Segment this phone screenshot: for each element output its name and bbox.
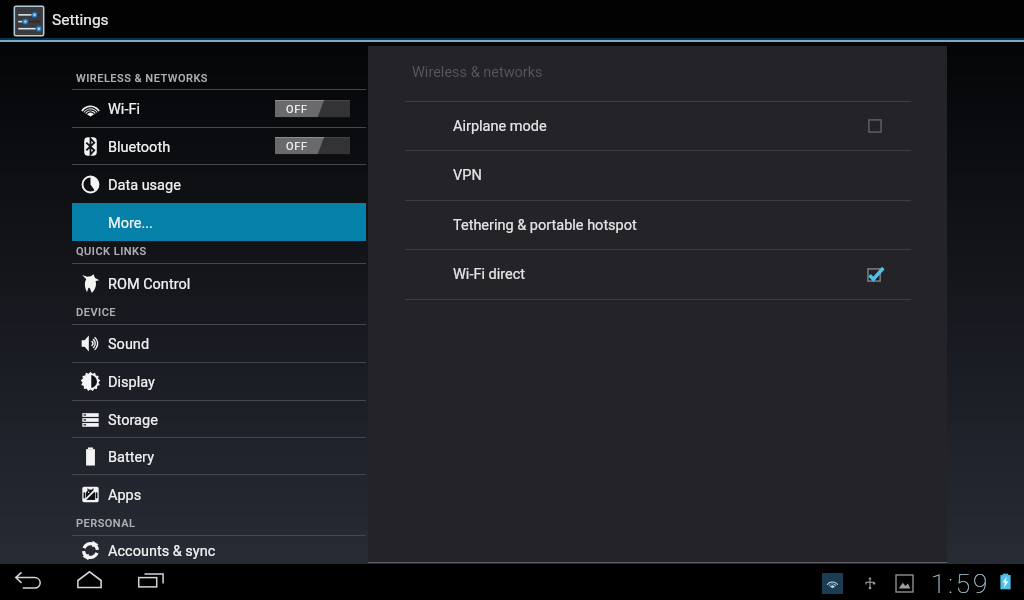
- staticText: VPN: [453, 167, 482, 184]
- button[interactable]: Settings: [13, 5, 45, 37]
- button[interactable]: Recent apps: [130, 562, 172, 598]
- button[interactable]: Apps: [72, 475, 366, 513]
- other: USB connected: [860, 573, 879, 592]
- button[interactable]: Sound: [72, 325, 366, 362]
- button[interactable]: Wi-Fi: [72, 90, 366, 127]
- button[interactable]: Back: [7, 562, 49, 598]
- staticText: Data usage: [108, 177, 181, 194]
- staticText: Wi-Fi: [108, 101, 140, 118]
- button[interactable]: OFF: [275, 137, 350, 155]
- button[interactable]: Tethering & portable hotspot: [368, 201, 947, 249]
- staticText: WIRELESS & NETWORKS: [76, 72, 208, 85]
- button[interactable]: Data usage: [72, 165, 366, 203]
- staticText: Airplane mode: [453, 118, 547, 135]
- button[interactable]: Wi-Fi direct: [368, 250, 947, 299]
- button[interactable]: Battery: [72, 438, 366, 474]
- button[interactable]: Home: [68, 562, 110, 598]
- other: Screenshot captured: [893, 572, 915, 594]
- staticText: Tethering & portable hotspot: [453, 217, 637, 234]
- button[interactable]: Airplane mode checkbox: [860, 111, 890, 141]
- staticText: Display: [108, 374, 155, 391]
- staticText: OFF: [286, 103, 308, 116]
- staticText: Battery: [108, 449, 154, 466]
- button[interactable]: Bluetooth: [72, 128, 366, 164]
- button[interactable]: More...: [72, 203, 366, 241]
- staticText: Storage: [108, 412, 158, 429]
- button[interactable]: Display: [72, 363, 366, 400]
- staticText: PERSONAL: [76, 517, 136, 530]
- staticText: Wireless & networks: [412, 64, 543, 81]
- staticText: Apps: [108, 487, 142, 504]
- staticText: Sound: [108, 336, 150, 353]
- staticText: Accounts & sync: [108, 543, 216, 560]
- button[interactable]: Storage: [72, 401, 366, 437]
- staticText: More...: [108, 215, 153, 232]
- other: Battery charging: [996, 572, 1015, 591]
- staticText: Settings: [52, 11, 109, 29]
- button[interactable]: ROM Control: [72, 264, 366, 302]
- button[interactable]: Wi-Fi direct checkbox: [860, 260, 890, 290]
- button[interactable]: Airplane mode: [368, 102, 947, 150]
- button[interactable]: Accounts & sync: [72, 536, 366, 564]
- staticText: ROM Control: [108, 276, 191, 293]
- staticText: OFF: [286, 140, 308, 153]
- staticText: 1:59: [931, 569, 991, 599]
- staticText: QUICK LINKS: [76, 245, 147, 258]
- button[interactable]: VPN: [368, 151, 947, 200]
- button[interactable]: OFF: [275, 100, 350, 118]
- button[interactable]: Wi-Fi status: [822, 573, 843, 594]
- staticText: DEVICE: [76, 306, 117, 319]
- staticText: Wi-Fi direct: [453, 266, 526, 283]
- staticText: Bluetooth: [108, 139, 171, 156]
